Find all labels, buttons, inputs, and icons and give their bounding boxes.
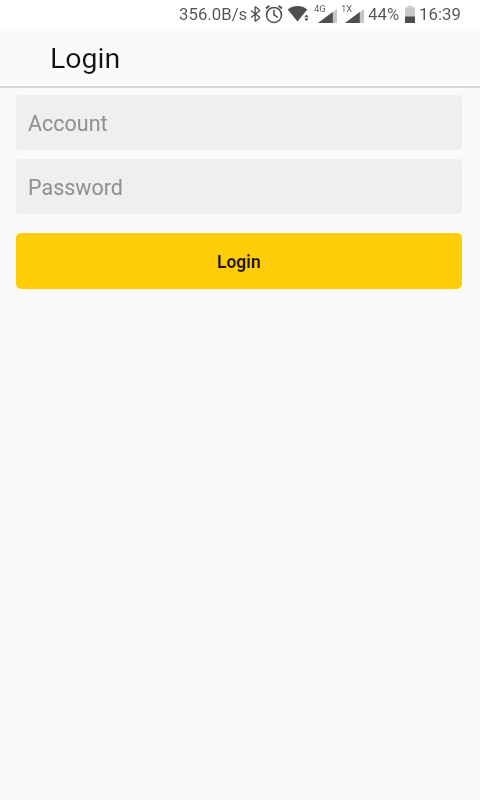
other: Battery 44 percent [405,6,415,23]
other: 4G signal [314,4,337,23]
button[interactable]: Login [16,233,462,289]
staticText: 44% [368,4,400,24]
other: 1X signal [341,4,364,23]
staticText: Login [50,42,121,75]
button[interactable]: Password [16,159,462,214]
staticText: Password [28,175,123,200]
staticText: 356.0B/s [179,4,248,24]
other: Wi-Fi connected [288,5,309,22]
other: Alarm set [265,5,283,22]
button[interactable]: Account [16,95,462,150]
staticText: 16:39 [419,4,461,24]
staticText: 1X [341,3,353,14]
staticText: Login [217,252,261,273]
other: Bluetooth on [251,6,260,22]
staticText: Account [28,111,108,136]
staticText: 4G [314,3,326,14]
